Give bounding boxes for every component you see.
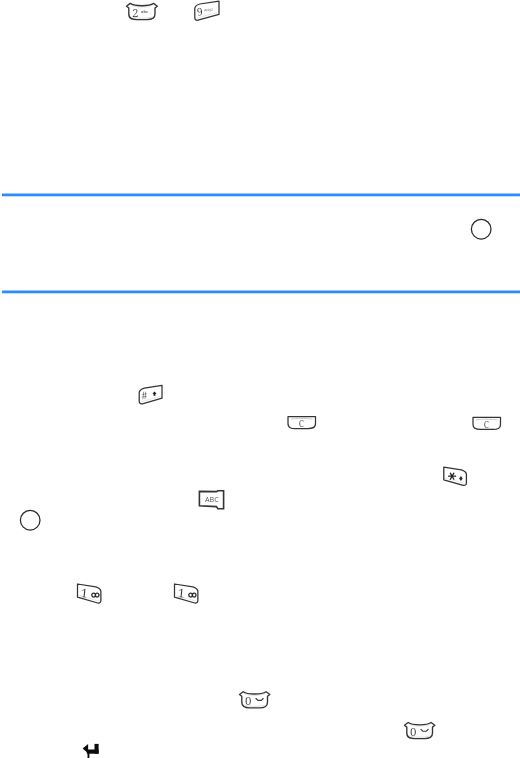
button[interactable]: Option circle	[19, 509, 42, 532]
button[interactable]: Key ABC	[197, 488, 226, 511]
button[interactable]: Key 9 wxyz	[188, 0, 222, 24]
button[interactable]: Key hash shift	[132, 382, 166, 407]
button[interactable]: Key 2 abc	[124, 1, 160, 24]
button[interactable]: Enter	[80, 741, 102, 758]
button[interactable]: Option circle	[470, 218, 493, 241]
button[interactable]: Key 1	[172, 582, 204, 607]
button[interactable]: Key C	[470, 415, 503, 433]
button[interactable]: Key 0 space	[237, 689, 272, 710]
button[interactable]: Key C	[285, 414, 318, 432]
button[interactable]: Key 1	[75, 582, 107, 607]
button[interactable]: Key star	[440, 464, 474, 489]
button[interactable]: Key 0 space	[402, 720, 437, 741]
